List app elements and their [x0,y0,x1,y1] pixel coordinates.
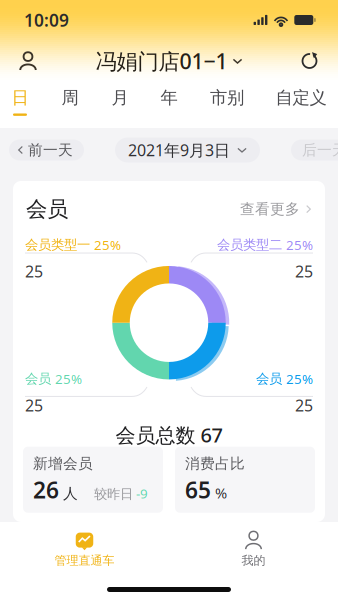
staticText: 市别 [210,87,244,108]
button[interactable]: 冯娟门店01−1 [89,41,248,81]
button[interactable]: 查看更多 [240,196,313,222]
staticText: 会员类型二 [217,236,282,253]
button[interactable]: Account [6,41,50,81]
staticText: 管理直通车 [54,553,114,568]
staticText: 65 [185,475,211,505]
staticText: 2021年9月3日 [128,139,230,161]
staticText: 月 [111,87,128,108]
staticText: 周 [61,87,78,108]
button[interactable]: 前一天 [9,139,84,160]
staticText: 自定义 [275,87,326,108]
button[interactable]: 月 [94,82,146,116]
staticText: 会员 [256,370,282,387]
staticText: 25% [94,236,121,254]
staticText: 我的 [241,553,265,568]
staticText: 会员类型一 [25,236,90,253]
staticText: 会员 [26,196,68,222]
staticText: 10:09 [24,8,69,31]
staticText: 25 [25,261,43,282]
staticText: 后一天 [302,141,338,159]
staticText: 人 [59,485,78,503]
staticText: 会员 [25,370,51,387]
button[interactable]: 我的 [169,526,338,572]
staticText: 25 [295,261,313,282]
staticText: 日 [11,87,28,108]
staticText: % [211,483,227,503]
button[interactable]: 后一天 [291,139,338,160]
staticText: 26 [33,475,59,505]
button[interactable]: 管理直通车 [0,526,169,572]
button[interactable]: 日 [0,82,46,116]
staticText: 25% [286,236,313,254]
staticText: -9 [133,484,148,502]
staticText: 年 [160,87,177,108]
button[interactable]: 市别 [201,82,253,116]
staticText: 消费占比 [185,455,245,473]
staticText: 25% [286,370,313,388]
staticText: 25 [295,395,313,416]
staticText: 25 [25,395,43,416]
button[interactable]: 年 [143,82,195,116]
staticText: 查看更多 [240,200,300,218]
staticText: 前一天 [28,141,73,159]
staticText: 冯娟门店01−1 [95,47,227,75]
button[interactable]: 自定义 [275,82,327,116]
button[interactable]: 2021年9月3日 [115,137,260,162]
staticText: 新增会员 [33,455,93,473]
staticText: 会员总数 67 [115,421,222,448]
button[interactable]: Refresh [288,41,332,81]
staticText: 25% [55,370,82,388]
staticText: 较昨日 [78,486,133,502]
button[interactable]: 周 [44,82,96,116]
